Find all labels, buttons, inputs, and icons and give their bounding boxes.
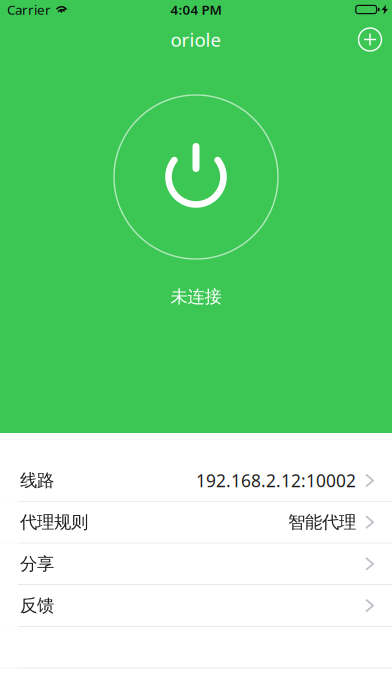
staticText: 线路: [20, 470, 54, 491]
button[interactable]: Add: [348, 18, 392, 60]
staticText: 分享: [20, 553, 54, 575]
staticText: oriole: [170, 27, 221, 52]
button[interactable]: Power on: [114, 95, 278, 259]
staticText: 192.168.2.12:10002: [196, 469, 356, 492]
staticText: 4:04 PM: [170, 1, 221, 18]
button[interactable]: 分享: [0, 543, 392, 585]
staticText: Carrier: [7, 1, 51, 18]
staticText: 未连接: [170, 286, 221, 307]
button[interactable]: 线路: [0, 460, 392, 502]
staticText: 代理规则: [20, 512, 88, 533]
button[interactable]: 反馈: [0, 585, 392, 627]
button[interactable]: 代理规则: [0, 502, 392, 543]
staticText: 反馈: [20, 595, 54, 616]
staticText: 智能代理: [288, 512, 356, 533]
